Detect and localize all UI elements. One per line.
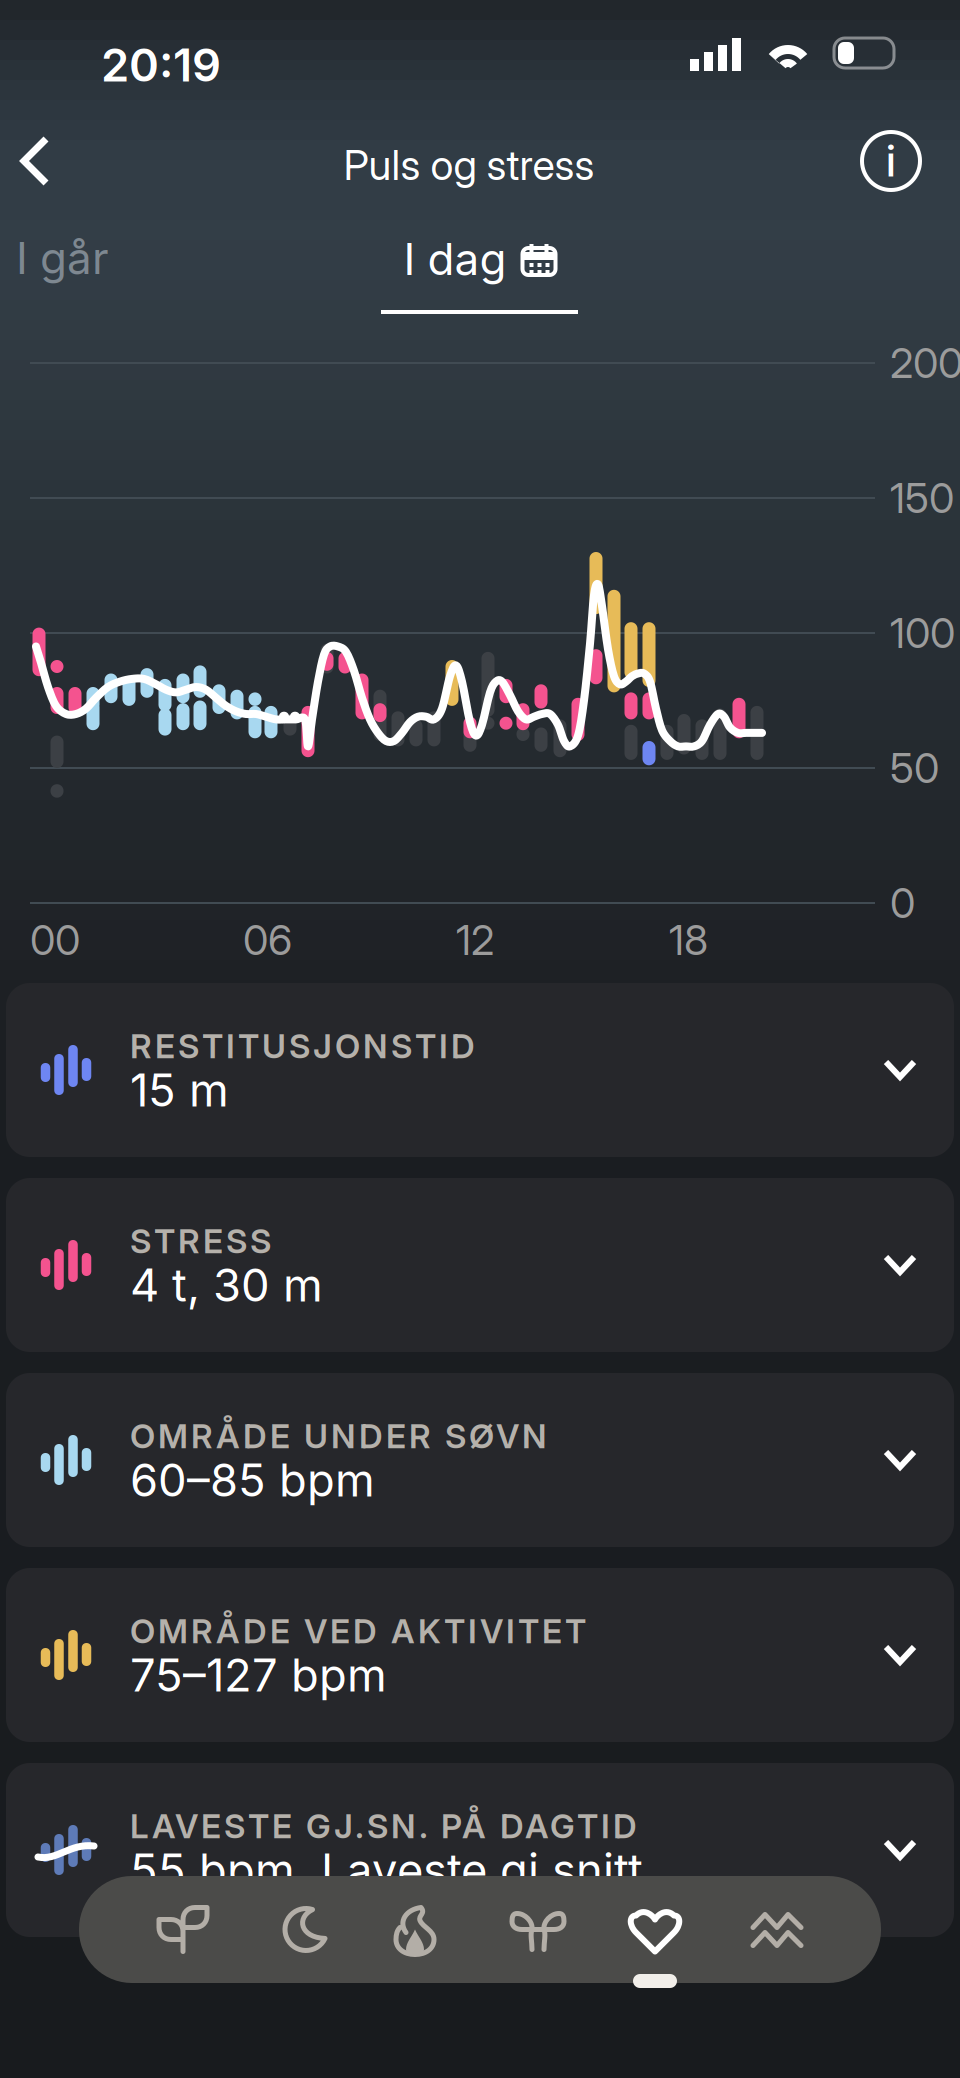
- staticText: RESTITUSJONSTID: [130, 1026, 475, 1066]
- button[interactable]: I dag: [0, 214, 578, 314]
- button[interactable]: Heart: [0, 0, 108, 107]
- button[interactable]: I går: [0, 214, 196, 285]
- button[interactable]: Calories: [0, 0, 108, 107]
- button[interactable]: LAVESTE GJ.SN. PÅ DAGTID: [6, 1763, 954, 1937]
- staticText: 00: [30, 916, 80, 964]
- staticText: 55 bpm, Laveste gj.snitt: [130, 1843, 643, 1897]
- button[interactable]: Back: [0, 136, 76, 186]
- button[interactable]: OMRÅDE UNDER SØVN: [6, 1373, 954, 1547]
- staticText: 50: [890, 744, 939, 792]
- staticText: I dag: [403, 233, 506, 285]
- button[interactable]: STRESS: [6, 1178, 954, 1352]
- staticText: 150: [890, 474, 954, 522]
- staticText: 18: [669, 916, 708, 964]
- button[interactable]: Body Battery: [0, 0, 108, 107]
- staticText: OMRÅDE UNDER SØVN: [130, 1416, 547, 1456]
- button[interactable]: Breathing: [0, 0, 108, 107]
- staticText: 0: [890, 879, 915, 927]
- staticText: 200: [890, 339, 960, 387]
- button[interactable]: RESTITUSJONSTID: [6, 983, 954, 1157]
- staticText: 60–85 bpm: [130, 1453, 375, 1507]
- staticText: 4 t, 30 m: [130, 1258, 323, 1312]
- staticText: Puls og stress: [343, 141, 594, 189]
- staticText: 06: [243, 916, 292, 964]
- button[interactable]: Cycle: [0, 0, 108, 107]
- staticText: STRESS: [130, 1221, 271, 1261]
- staticText: OMRÅDE VED AKTIVITET: [130, 1611, 586, 1651]
- staticText: LAVESTE GJ.SN. PÅ DAGTID: [130, 1806, 637, 1846]
- staticText: 15 m: [130, 1063, 229, 1117]
- staticText: i: [885, 136, 896, 186]
- button[interactable]: Info: [862, 132, 960, 190]
- staticText: 100: [890, 609, 955, 657]
- staticText: 20:19: [101, 38, 221, 92]
- staticText: I går: [16, 232, 109, 284]
- button[interactable]: Sleep: [0, 0, 108, 107]
- staticText: 75–127 bpm: [130, 1648, 387, 1702]
- button[interactable]: OMRÅDE VED AKTIVITET: [6, 1568, 954, 1742]
- staticText: 12: [456, 916, 494, 964]
